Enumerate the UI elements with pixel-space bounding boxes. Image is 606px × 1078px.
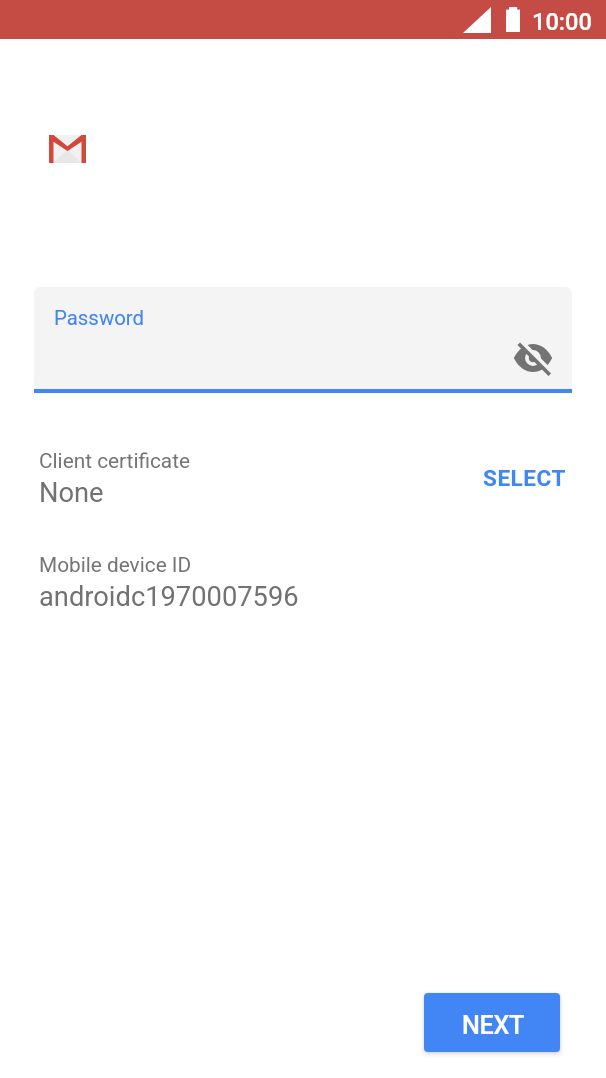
staticText: SELECT xyxy=(483,465,566,491)
staticText: 10:00 xyxy=(532,8,592,36)
staticText: NEXT xyxy=(462,1011,524,1041)
button[interactable]: SELECT xyxy=(467,455,582,501)
staticText: Mobile device ID xyxy=(39,553,192,577)
staticText: None xyxy=(39,477,104,509)
staticText: Password xyxy=(54,306,145,330)
staticText: Client certificate xyxy=(39,449,191,473)
button[interactable] xyxy=(34,287,572,389)
staticText: androidc1970007596 xyxy=(39,581,299,613)
button[interactable]: NEXT xyxy=(424,993,560,1052)
button[interactable]: Show password xyxy=(506,331,560,385)
